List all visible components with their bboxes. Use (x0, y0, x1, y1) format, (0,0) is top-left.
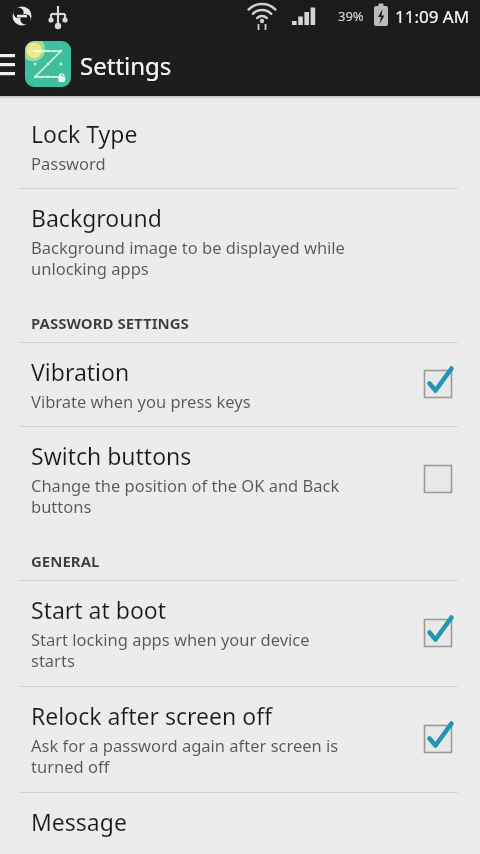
staticText: Background image to be displayed while u… (31, 236, 345, 280)
staticText: Start locking apps when your device star… (31, 628, 310, 672)
staticText: Change the position of the OK and Back b… (31, 474, 340, 518)
button[interactable]: Menu (0, 44, 18, 84)
staticText: Start at boot (31, 594, 167, 625)
staticText: 39% (338, 7, 364, 25)
staticText: Vibration (31, 356, 130, 387)
staticText: Ask for a password again after screen is… (31, 734, 339, 778)
staticText: GENERAL (31, 551, 100, 571)
button[interactable]: Start at boot (0, 581, 480, 686)
staticText: Lock Type (31, 118, 138, 149)
button[interactable]: Message (0, 793, 480, 854)
staticText: Switch buttons (31, 440, 192, 471)
staticText: Message (31, 806, 127, 837)
button[interactable]: Lock Type (0, 105, 480, 188)
button[interactable]: Switch buttons (0, 427, 480, 532)
staticText: Relock after screen off (31, 700, 272, 731)
button[interactable]: Vibration (0, 343, 480, 426)
staticText: Settings (80, 49, 172, 82)
staticText: PASSWORD SETTINGS (31, 313, 189, 333)
staticText: 11:09 AM (395, 5, 470, 28)
button[interactable]: Background (0, 189, 480, 294)
staticText: Background (31, 202, 162, 233)
staticText: Vibrate when you press keys (31, 390, 251, 412)
staticText: Password (31, 152, 106, 174)
button[interactable]: Relock after screen off (0, 687, 480, 792)
